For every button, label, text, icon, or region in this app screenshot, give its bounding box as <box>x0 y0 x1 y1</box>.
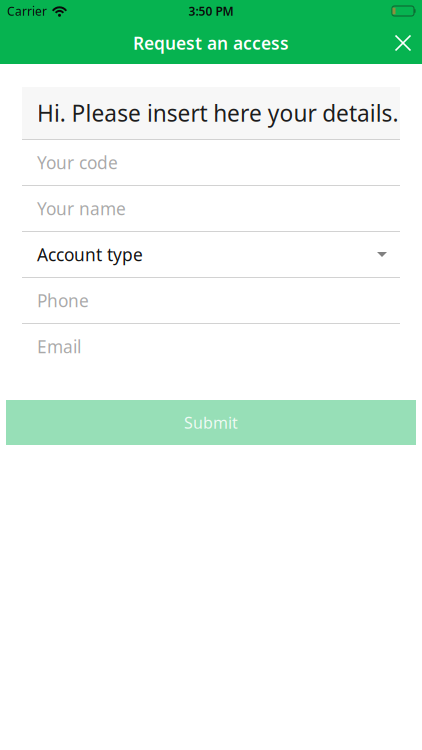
staticText: 3:50 PM <box>188 3 233 19</box>
button[interactable]: Your name <box>22 186 400 232</box>
staticText: Phone <box>37 289 89 312</box>
button[interactable]: Your code <box>22 140 400 186</box>
staticText: Submit <box>184 412 238 433</box>
staticText: Your code <box>37 151 118 174</box>
staticText: Email <box>37 335 81 358</box>
button[interactable]: Account type <box>22 232 400 278</box>
staticText: Account type <box>37 243 143 266</box>
staticText: Your name <box>37 197 126 220</box>
button[interactable]: Email <box>22 324 400 369</box>
button[interactable]: Phone <box>22 278 400 324</box>
button[interactable]: Submit <box>6 400 416 445</box>
staticText: Carrier <box>7 3 47 19</box>
button[interactable]: Close <box>395 35 422 51</box>
staticText: Request an access <box>133 31 289 54</box>
staticText: Hi. Please insert here your details. <box>37 98 398 128</box>
